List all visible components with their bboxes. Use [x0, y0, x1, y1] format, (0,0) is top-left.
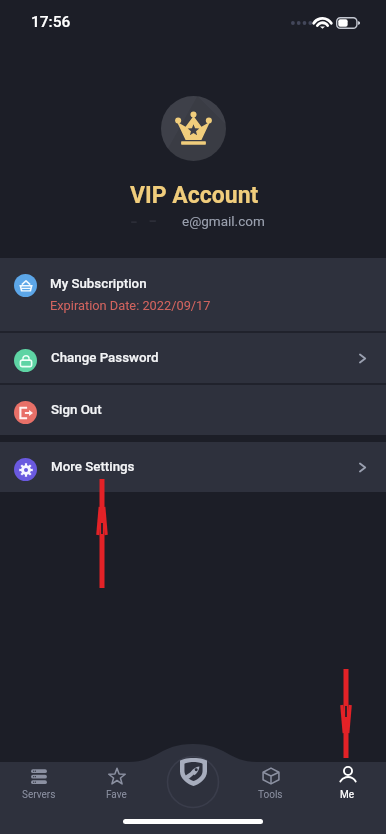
- staticText: Me: [340, 789, 355, 801]
- staticText: Sign Out: [51, 402, 102, 418]
- button[interactable]: Change Password: [0, 333, 386, 383]
- button[interactable]: More Settings: [0, 442, 386, 492]
- staticText: Change Password: [51, 350, 159, 366]
- button[interactable]: My Subscription: [0, 258, 386, 331]
- staticText: e@gmail.com: [182, 213, 265, 229]
- button[interactable]: Servers: [0, 744, 78, 834]
- staticText: 17:56: [31, 13, 71, 31]
- staticText: Servers: [22, 789, 56, 801]
- staticText: Expiration Date: 2022/09/17: [50, 298, 211, 313]
- staticText: Fave: [106, 789, 127, 801]
- staticText: More Settings: [51, 459, 135, 475]
- staticText: VIP Account: [130, 182, 259, 209]
- staticText: Tools: [258, 789, 283, 801]
- staticText: My Subscription: [50, 276, 147, 292]
- button[interactable]: Tools: [232, 744, 309, 834]
- button[interactable]: Fave: [78, 744, 155, 834]
- button[interactable]: Sign Out: [0, 385, 386, 435]
- button[interactable]: Connect: [180, 758, 207, 786]
- button[interactable]: Me: [309, 744, 386, 834]
